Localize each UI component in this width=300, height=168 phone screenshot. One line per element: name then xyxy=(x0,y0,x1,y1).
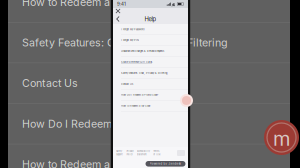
button[interactable]: Safety xyxy=(116,150,123,156)
button[interactable]: Close xyxy=(113,8,122,14)
button[interactable]: How to Redeem a Toy Code xyxy=(113,101,188,112)
staticText: How to Redeem a Toy Code xyxy=(22,158,161,168)
button[interactable]: How Do I Redeem a Promo Code xyxy=(8,104,290,144)
staticText: Accessibility xyxy=(137,150,150,153)
staticText: Support xyxy=(116,153,123,156)
staticText: How to Redeem a Toy Code xyxy=(22,0,161,8)
staticText: Statement xyxy=(137,153,147,156)
button[interactable]: How to Redeem a Toy Code xyxy=(8,144,290,168)
button[interactable]: Terms xyxy=(153,150,160,156)
button[interactable]: Contact Us xyxy=(113,79,188,90)
staticText: Help xyxy=(144,15,156,23)
staticText: Powered by Zendesk xyxy=(149,162,181,165)
button[interactable]: Chat with support xyxy=(180,94,193,107)
button[interactable]: Back xyxy=(113,14,122,24)
button[interactable]: Accessibility xyxy=(137,150,150,156)
button[interactable]: I Forgot My Password xyxy=(113,24,188,35)
staticText: Contact Us xyxy=(121,83,133,85)
button[interactable]: I Forgot My PIN xyxy=(113,35,188,46)
staticText: How Do I Redeem a Promo Code? xyxy=(121,93,158,96)
button[interactable]: Privacy xyxy=(126,150,133,156)
staticText: I Forgot My PIN xyxy=(121,39,139,42)
button[interactable]: Unauthorized Charges & Refund Requests xyxy=(113,46,188,57)
staticText: Unauthorized Charges & Refund Requests xyxy=(121,50,164,53)
staticText: of Use xyxy=(153,153,160,156)
button[interactable]: How Do I Redeem a Promo Code? xyxy=(113,90,188,101)
staticText: Privacy xyxy=(126,150,133,153)
staticText: Terms xyxy=(153,150,159,153)
staticText: 9:41 xyxy=(117,1,126,7)
staticText: Policy xyxy=(126,153,132,156)
button[interactable]: Source Reference Gift Cards xyxy=(113,57,188,68)
button[interactable]: Contact Us xyxy=(8,63,290,103)
button[interactable]: How to Redeem a Toy Code xyxy=(8,0,290,22)
button[interactable]: Safety Features: Chat, Privacy & Filteri… xyxy=(8,23,290,63)
staticText: Safety xyxy=(116,150,122,153)
staticText: Safety Features: Chat, Privacy & Filteri… xyxy=(22,36,228,49)
staticText: Contact Us xyxy=(22,77,78,90)
staticText: m xyxy=(273,126,290,151)
staticText: I Forgot My Password xyxy=(121,28,144,31)
staticText: Source Reference Gift Cards xyxy=(121,61,152,64)
staticText: How to Redeem a Toy Code xyxy=(121,104,150,107)
staticText: How Do I Redeem a Promo Code xyxy=(22,117,186,130)
staticText: Safety Features: Chat, Privacy & Filteri… xyxy=(121,72,167,74)
button[interactable]: Safety Features: Chat, Privacy & Filteri… xyxy=(113,68,188,79)
